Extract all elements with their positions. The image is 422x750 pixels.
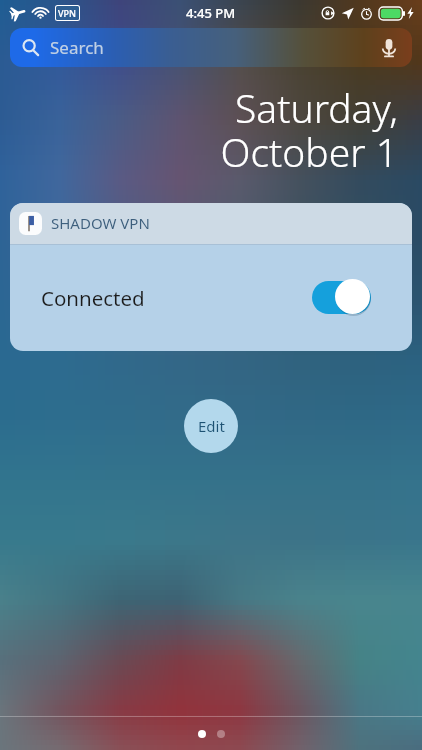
button[interactable]: Page 1 xyxy=(198,730,206,738)
staticText: 4:45 PM xyxy=(186,4,236,22)
button[interactable]: Page 2 xyxy=(217,730,225,738)
staticText: Search xyxy=(50,36,104,59)
staticText: Saturday, October 1 xyxy=(220,81,398,179)
staticText: Edit xyxy=(198,416,225,436)
staticText: SHADOW VPN xyxy=(51,213,150,233)
staticText: Connected xyxy=(41,284,145,312)
staticText: VPN xyxy=(58,7,77,19)
button[interactable]: Search xyxy=(10,28,412,67)
button[interactable]: Edit xyxy=(184,399,238,453)
button[interactable]: VPN toggle xyxy=(312,280,372,316)
button[interactable]: SHADOW VPN xyxy=(19,203,412,244)
button[interactable]: Voice search xyxy=(377,36,401,60)
